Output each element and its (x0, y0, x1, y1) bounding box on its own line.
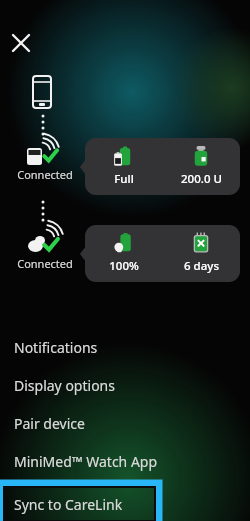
button[interactable]: MiniMed™ Watch App (0, 442, 250, 480)
staticText: 200.0 U (181, 171, 222, 187)
button[interactable]: Full (85, 138, 240, 195)
button[interactable]: 100% (85, 225, 240, 282)
staticText: 6 days (184, 258, 219, 274)
button[interactable]: Pair device (0, 404, 250, 442)
staticText: Full (114, 171, 134, 187)
staticText: Connected (17, 167, 73, 182)
button[interactable]: Close (3, 25, 39, 61)
button[interactable]: Display options (0, 366, 250, 404)
staticText: Display options (14, 376, 115, 395)
staticText: Sync to CareLink (14, 495, 123, 514)
staticText: Pair device (14, 414, 85, 433)
staticText: MiniMed™ Watch App (14, 452, 158, 471)
staticText: Connected (17, 256, 73, 271)
button[interactable]: Notifications (0, 328, 250, 366)
staticText: 100% (109, 258, 139, 274)
button[interactable]: Sync to CareLink (0, 483, 159, 521)
staticText: Notifications (14, 338, 98, 357)
